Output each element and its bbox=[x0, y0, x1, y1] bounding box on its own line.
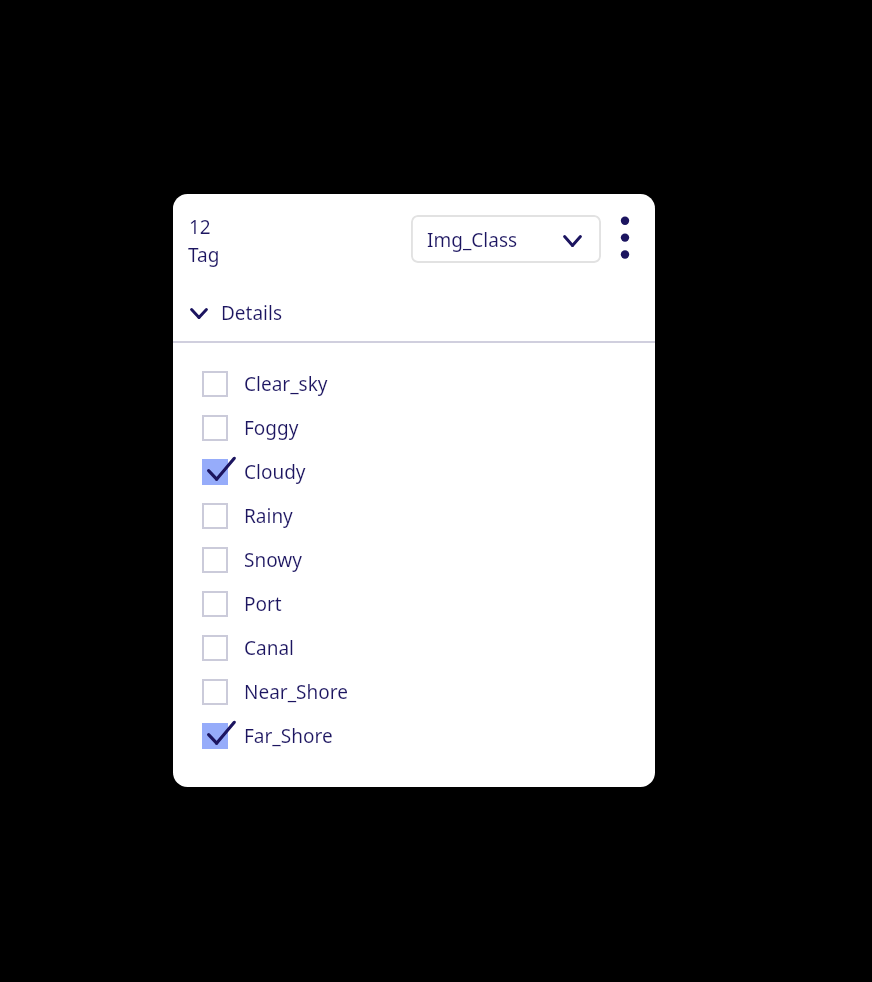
button[interactable]: Cloudy bbox=[173, 450, 655, 494]
button[interactable]: Img_Class bbox=[411, 215, 601, 263]
button[interactable]: Near_Shore bbox=[173, 670, 655, 714]
staticText: Far_Shore bbox=[244, 723, 333, 749]
staticText: Cloudy bbox=[244, 459, 306, 485]
button[interactable]: Clear_sky bbox=[173, 362, 655, 406]
button[interactable]: Far_Shore bbox=[173, 714, 655, 758]
staticText: Rainy bbox=[244, 503, 293, 529]
button[interactable]: Snowy bbox=[173, 538, 655, 582]
staticText: 12 bbox=[189, 214, 211, 240]
staticText: Details bbox=[221, 300, 283, 326]
staticText: Canal bbox=[244, 635, 294, 661]
staticText: Tag bbox=[188, 242, 220, 268]
staticText: Foggy bbox=[244, 415, 299, 441]
staticText: Port bbox=[244, 591, 282, 617]
button[interactable]: Canal bbox=[173, 626, 655, 670]
button[interactable]: Foggy bbox=[173, 406, 655, 450]
button[interactable]: Port bbox=[173, 582, 655, 626]
button[interactable]: Rainy bbox=[173, 494, 655, 538]
button[interactable]: Details bbox=[173, 289, 655, 337]
staticText: Img_Class bbox=[427, 227, 518, 253]
staticText: Near_Shore bbox=[244, 679, 348, 705]
staticText: Snowy bbox=[244, 547, 302, 573]
staticText: Clear_sky bbox=[244, 371, 328, 397]
button[interactable]: More options bbox=[609, 209, 649, 267]
